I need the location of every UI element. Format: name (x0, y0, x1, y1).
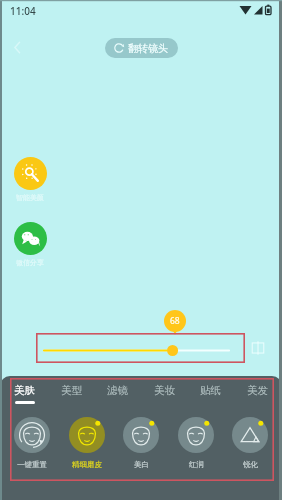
button[interactable]: 美型 (58, 384, 85, 404)
button[interactable]: 美妆 (151, 384, 178, 404)
staticText: 美白 (134, 460, 149, 469)
button[interactable]: 美白 (119, 417, 163, 469)
button[interactable]: 美发 (244, 384, 271, 404)
staticText: 美肤 (14, 384, 35, 397)
staticText: 11:04 (10, 4, 36, 18)
button[interactable]: 滤镜 (104, 384, 131, 404)
button[interactable]: 贴纸 (197, 384, 224, 404)
staticText: 锐化 (243, 460, 258, 469)
staticText: 贴纸 (200, 384, 221, 397)
staticText: 精细磨皮 (72, 460, 102, 469)
button[interactable]: 美肤 (11, 384, 38, 404)
staticText: 68 (170, 315, 180, 327)
staticText: 美发 (247, 384, 268, 397)
staticText: 翻转镜头 (128, 42, 168, 55)
button[interactable]: Back (4, 34, 30, 60)
staticText: 一键重置 (17, 460, 47, 469)
staticText: 红润 (189, 460, 204, 469)
button[interactable]: 锐化 (228, 417, 272, 469)
staticText: 微信分享 (16, 258, 44, 267)
button[interactable]: 一键重置 (10, 417, 54, 469)
button[interactable]: 智能美颜 (14, 157, 47, 190)
staticText: 美型 (61, 384, 82, 397)
button[interactable]: Compare (249, 339, 267, 357)
button[interactable]: 翻转镜头 (105, 38, 178, 58)
staticText: 美妆 (154, 384, 175, 397)
staticText: 滤镜 (107, 384, 128, 397)
button[interactable]: 微信分享 (14, 222, 47, 255)
staticText: 智能美颜 (16, 193, 44, 202)
button[interactable]: 红润 (174, 417, 218, 469)
button[interactable]: 精细磨皮 (65, 417, 109, 469)
